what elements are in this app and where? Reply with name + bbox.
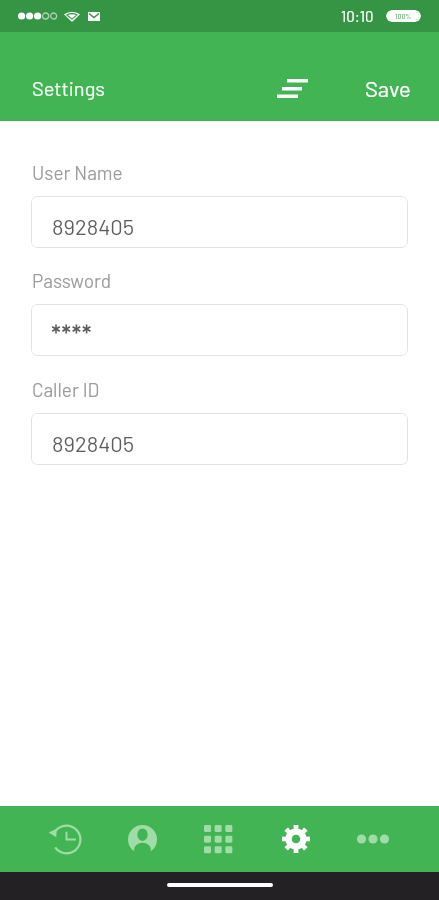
staticText: User Name bbox=[32, 161, 123, 184]
staticText: Password bbox=[32, 269, 112, 292]
button[interactable]: Save bbox=[355, 69, 421, 107]
button[interactable]: Recents bbox=[28, 806, 104, 872]
staticText: 100% bbox=[395, 12, 412, 20]
button[interactable]: Settings bbox=[257, 806, 334, 872]
button[interactable] bbox=[31, 304, 408, 356]
staticText: 8928405 bbox=[52, 430, 135, 456]
button[interactable]: More bbox=[334, 806, 411, 872]
staticText: 8928405 bbox=[52, 213, 135, 239]
button[interactable]: Contacts bbox=[104, 806, 180, 872]
staticText: 10:10 bbox=[341, 7, 374, 25]
button[interactable]: Dialpad bbox=[180, 806, 257, 872]
staticText: Caller ID bbox=[32, 378, 100, 401]
button[interactable]: 8928405 bbox=[31, 413, 408, 465]
staticText: Settings bbox=[32, 76, 105, 100]
button[interactable]: Sort bbox=[262, 65, 319, 113]
staticText: Save bbox=[365, 75, 411, 101]
button[interactable]: 8928405 bbox=[31, 196, 408, 248]
